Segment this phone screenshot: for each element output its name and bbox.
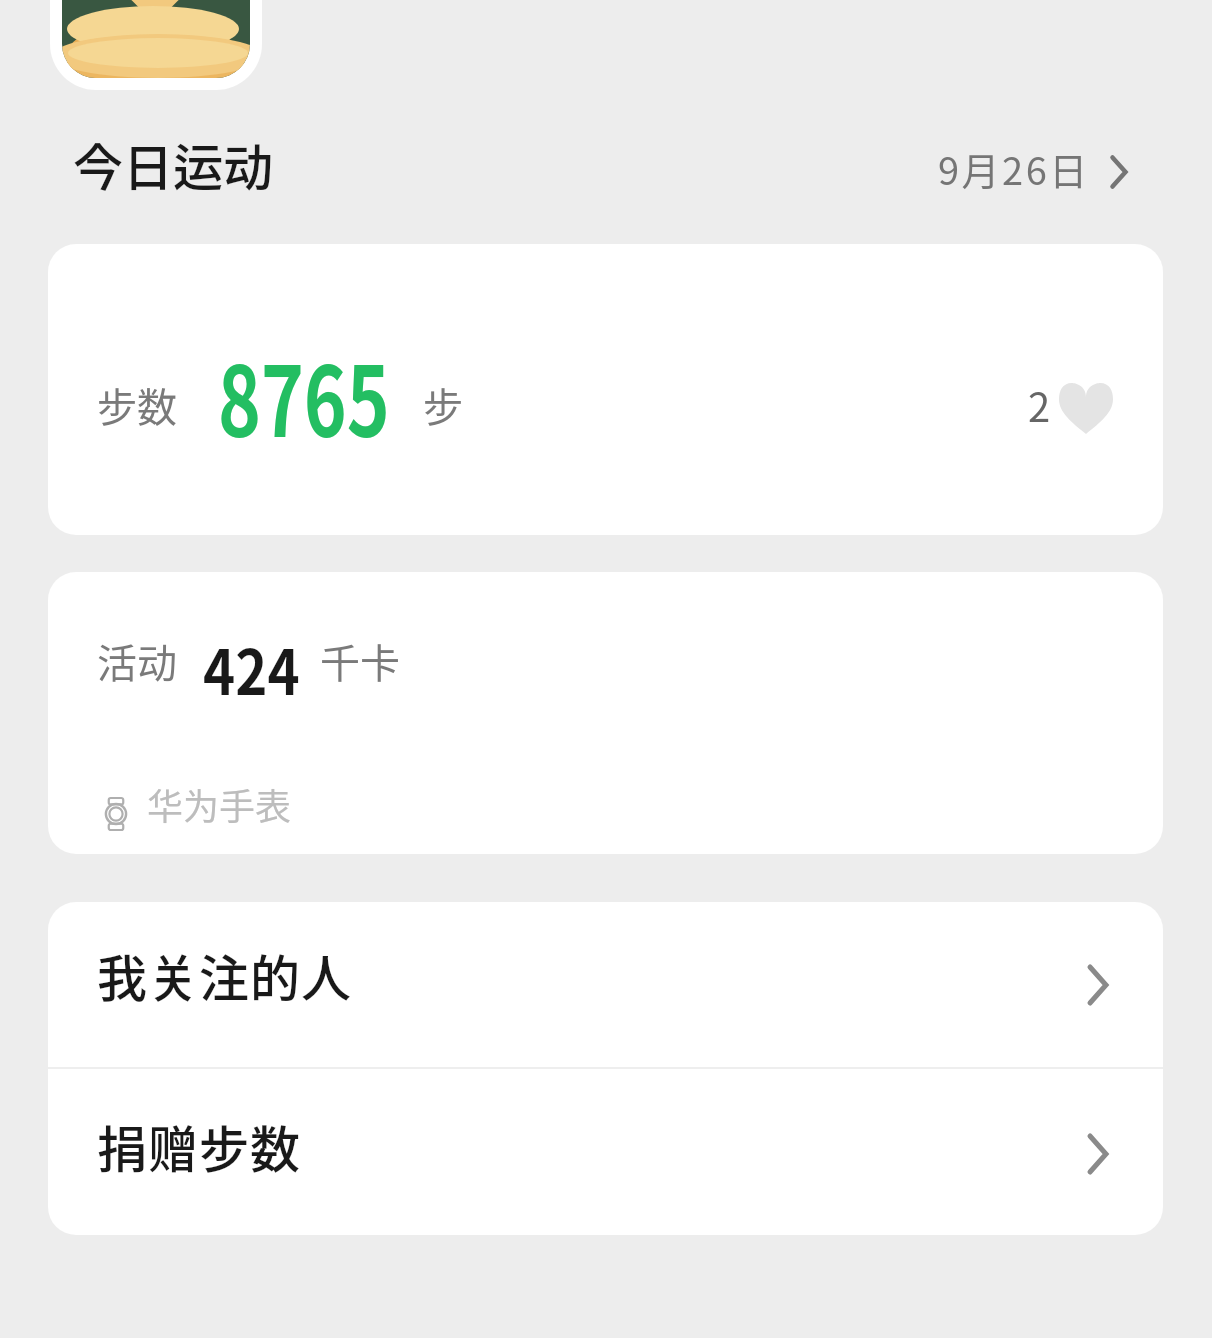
button[interactable] xyxy=(930,130,1140,210)
staticText: 我关注的人 xyxy=(97,939,352,1011)
staticText: 2 xyxy=(1028,376,1051,434)
button[interactable]: 捐赠步数 xyxy=(48,1069,1163,1235)
staticText: 活动 xyxy=(97,632,177,690)
staticText: 9月26日 xyxy=(938,141,1090,196)
button[interactable] xyxy=(50,0,262,90)
staticText: 424 xyxy=(203,623,300,713)
button[interactable]: 我关注的人 xyxy=(48,902,1163,1067)
button[interactable] xyxy=(1008,354,1138,434)
staticText: 华为手表 xyxy=(147,778,292,830)
staticText: 8765 xyxy=(218,324,390,464)
staticText: 千卡 xyxy=(320,632,400,690)
staticText: 步 xyxy=(423,376,463,434)
staticText: 今日运动 xyxy=(73,128,273,200)
staticText: 捐赠步数 xyxy=(97,1110,301,1182)
staticText: 步数 xyxy=(97,376,177,434)
